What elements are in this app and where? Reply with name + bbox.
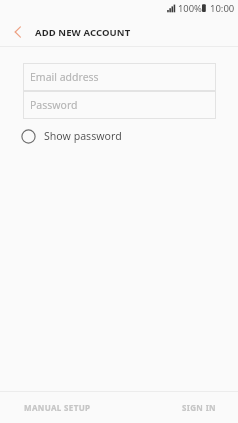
button[interactable]: Email address [23,63,216,91]
staticText: ADD NEW ACCOUNT [35,26,131,39]
button[interactable]: SIGN IN [119,402,238,413]
button[interactable]: Password [23,91,216,119]
staticText: Email address [30,70,99,84]
button[interactable]: Show password [0,119,238,149]
staticText: MANUAL SETUP [24,402,91,413]
staticText: SIGN IN [182,402,216,413]
button[interactable]: Navigate up [0,18,28,46]
staticText: 10:00 [210,2,235,15]
staticText: Show password [44,129,122,143]
staticText: 100% [178,2,202,15]
staticText: Password [30,98,78,112]
button[interactable]: MANUAL SETUP [0,402,119,413]
